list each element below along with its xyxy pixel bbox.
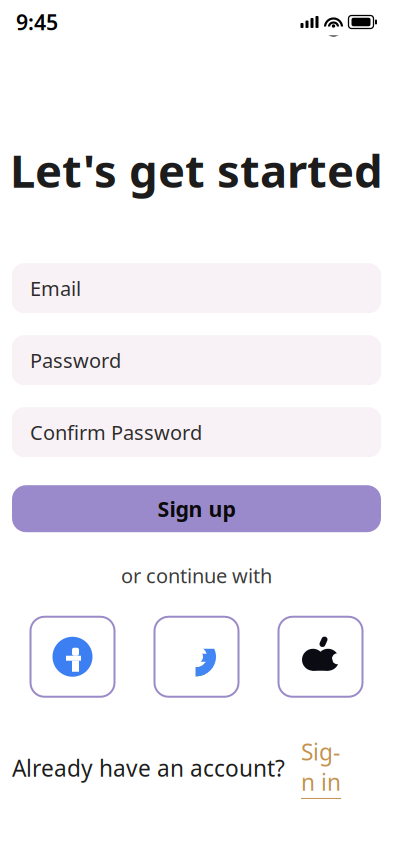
staticText: Already have an account? — [12, 753, 285, 783]
staticText: Email — [30, 275, 81, 301]
staticText: Sign in — [301, 737, 341, 797]
button[interactable]: Continue with Apple — [278, 617, 362, 697]
staticText: Password — [30, 347, 121, 373]
staticText: Let's get started — [10, 140, 383, 200]
staticText: Sign up — [157, 494, 235, 523]
staticText: or continue with — [121, 562, 272, 589]
staticText: 9:45 — [16, 8, 58, 36]
button[interactable]: Continue with Facebook — [30, 617, 114, 697]
button[interactable]: Sign in — [301, 737, 341, 799]
button[interactable]: Sign up — [12, 485, 381, 532]
staticText: Confirm Password — [30, 419, 202, 445]
button[interactable]: Continue with Google — [154, 617, 238, 697]
